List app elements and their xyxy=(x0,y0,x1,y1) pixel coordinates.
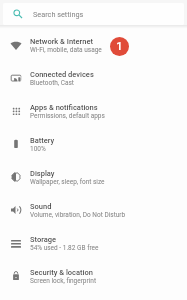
button[interactable]: Sound xyxy=(0,194,187,227)
button[interactable]: Search settings xyxy=(3,3,184,25)
staticText: Volume, vibration, Do Not Disturb xyxy=(30,211,126,219)
staticText: Storage xyxy=(30,235,57,244)
staticText: 100% xyxy=(30,145,46,153)
staticText: Battery xyxy=(30,136,55,145)
staticText: Permissions, default apps xyxy=(30,112,105,120)
button[interactable]: Security & location xyxy=(0,260,187,293)
staticText: Apps & notifications xyxy=(30,103,98,112)
staticText: Search settings xyxy=(33,10,84,19)
button[interactable]: Storage xyxy=(0,227,187,260)
staticText: 54% used - 1.82 GB free xyxy=(30,244,99,252)
staticText: Network & Internet xyxy=(30,37,93,46)
button[interactable]: Display xyxy=(0,161,187,194)
staticText: Wi-Fi, mobile, data usage xyxy=(30,46,102,54)
staticText: Display xyxy=(30,169,55,178)
button[interactable]: Connected devices xyxy=(0,62,187,95)
staticText: Bluetooth, Cast xyxy=(30,79,74,87)
staticText: Sound xyxy=(30,202,52,211)
button[interactable]: Battery xyxy=(0,128,187,161)
staticText: Connected devices xyxy=(30,70,94,79)
button[interactable]: Network & Internet xyxy=(0,29,187,62)
staticText: 1 xyxy=(116,40,123,53)
staticText: Security & location xyxy=(30,268,93,277)
staticText: Wallpaper, sleep, font size xyxy=(30,178,105,186)
staticText: Screen lock, fingerprint xyxy=(30,277,97,285)
button[interactable]: 1 notification xyxy=(110,37,129,56)
button[interactable]: Apps & notifications xyxy=(0,95,187,128)
